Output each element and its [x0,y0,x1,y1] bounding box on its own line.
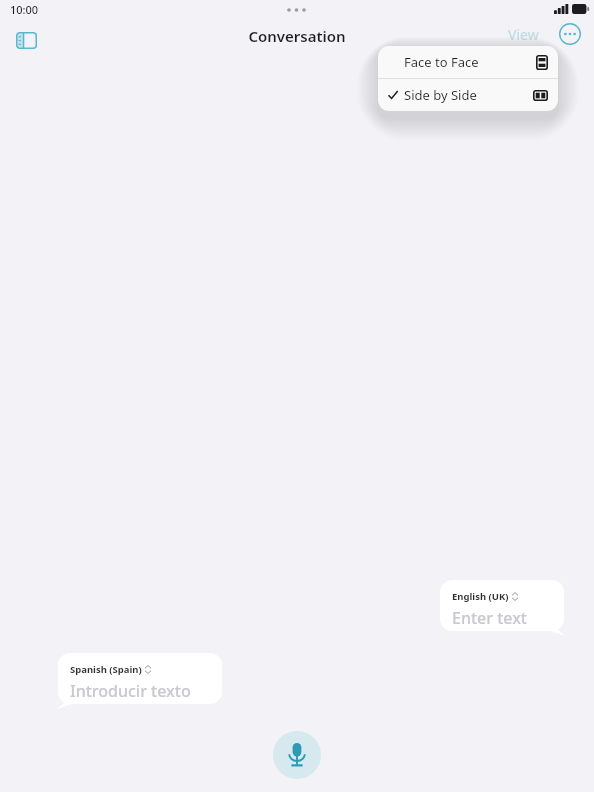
button[interactable]: English (UK) [440,580,564,643]
staticText: Spanish (Spain) [70,663,142,676]
button[interactable]: View [508,25,539,44]
staticText: Enter text [452,607,527,629]
staticText: View [508,25,539,44]
button[interactable]: Face to Face [378,46,558,78]
button[interactable]: Show sidebar [10,24,42,56]
button[interactable]: Start recording [273,731,321,779]
staticText: Conversation [0,26,594,46]
button[interactable]: More options [558,22,582,46]
staticText: Introducir texto [70,680,191,702]
staticText: Side by Side [404,86,477,104]
staticText: Face to Face [404,53,479,71]
button[interactable]: Spanish (Spain) [58,653,222,716]
button[interactable]: Side by Side [378,79,558,111]
staticText: 10:00 [10,2,39,17]
staticText: English (UK) [452,590,509,603]
